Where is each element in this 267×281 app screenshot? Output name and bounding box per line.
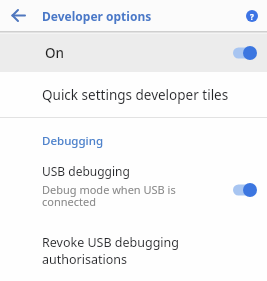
staticText: Debugging: [42, 133, 104, 149]
button[interactable]: ?: [246, 10, 258, 22]
staticText: On: [45, 44, 65, 62]
staticText: USB debugging: [42, 163, 130, 179]
button[interactable]: Quick settings developer tiles: [0, 72, 267, 117]
button[interactable]: On: [0, 34, 267, 72]
staticText: ?: [250, 11, 254, 22]
staticText: Developer options: [42, 8, 152, 24]
button[interactable]: [12, 9, 26, 23]
button[interactable]: Revoke USB debugging authorisations: [42, 234, 180, 268]
button[interactable]: USB debugging: [0, 163, 267, 209]
staticText: Debug mode when USB is connected: [42, 182, 176, 209]
staticText: Quick settings developer tiles: [42, 86, 229, 104]
